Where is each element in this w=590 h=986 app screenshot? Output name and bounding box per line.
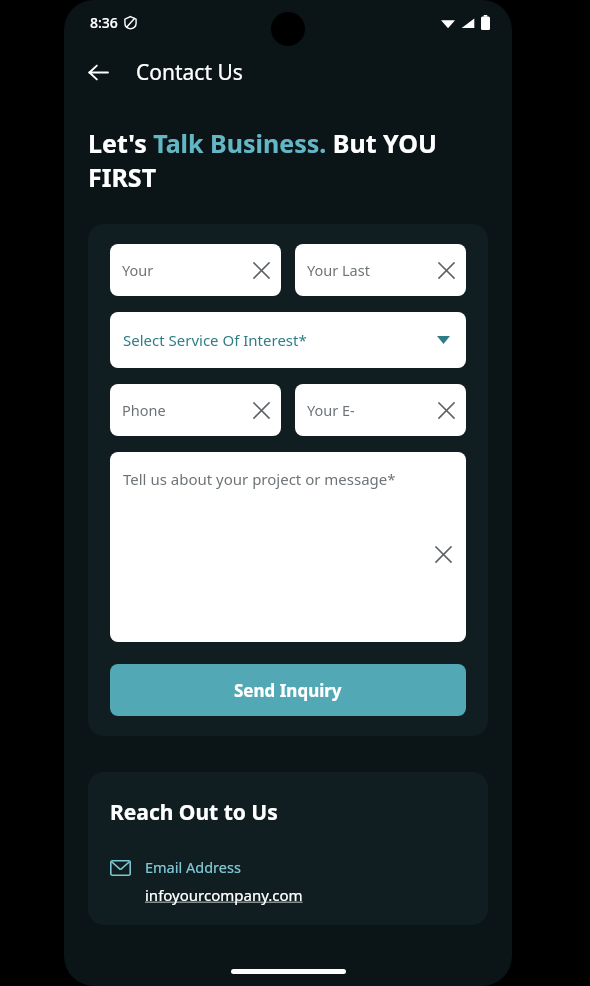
- staticText: Tell us about your project or message*: [123, 469, 396, 489]
- staticText: Your Last …: [307, 260, 371, 280]
- staticText: Phone Nu…: [122, 400, 186, 420]
- button[interactable]: Your E-mail*: [295, 384, 466, 436]
- button[interactable]: Phone Nu…: [110, 384, 281, 436]
- staticText: Email Address: [145, 857, 241, 877]
- staticText: Select Service Of Interest*: [123, 330, 307, 350]
- button[interactable]: Back: [76, 50, 120, 94]
- button[interactable]: Clear: [250, 259, 272, 281]
- button[interactable]: Send Inquiry: [110, 664, 466, 716]
- button[interactable]: Your First …: [110, 244, 281, 296]
- staticText: Let's Talk Business. But YOU FIRST: [88, 126, 488, 194]
- button[interactable]: Select Service Of Interest*: [110, 312, 466, 368]
- button[interactable]: Your Last …: [295, 244, 466, 296]
- staticText: Your First …: [122, 260, 186, 280]
- button[interactable]: Clear: [435, 259, 457, 281]
- staticText: Your E-mail*: [307, 400, 371, 420]
- staticText: Reach Out to Us: [110, 798, 278, 827]
- button[interactable]: Clear: [432, 543, 454, 565]
- button[interactable]: Tell us about your project or message*: [110, 452, 466, 642]
- button[interactable]: Clear: [250, 399, 272, 421]
- staticText: 8:36: [90, 13, 118, 32]
- staticText: Send Inquiry: [234, 679, 342, 702]
- button[interactable]: Clear: [435, 399, 457, 421]
- staticText: Contact Us: [136, 58, 243, 87]
- button[interactable]: Email Address: [110, 857, 466, 905]
- staticText: infoyourcompany.com: [145, 885, 303, 905]
